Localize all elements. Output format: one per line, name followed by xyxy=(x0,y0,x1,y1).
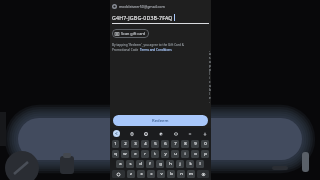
staticText: b xyxy=(170,171,173,177)
staticText: u xyxy=(174,151,177,157)
button[interactable]: r xyxy=(141,150,149,158)
staticText: 5 xyxy=(154,141,157,147)
staticText: 1 xyxy=(114,141,117,147)
staticText: modcleisner50@gmail.com xyxy=(119,4,165,9)
button[interactable]: c xyxy=(147,170,155,178)
button[interactable]: Shift xyxy=(112,170,125,178)
staticText: 2 xyxy=(124,141,127,147)
staticText: 4 xyxy=(144,141,147,147)
button[interactable]: p xyxy=(201,150,209,158)
staticText: p xyxy=(204,151,207,157)
button[interactable]: o xyxy=(191,150,199,158)
button[interactable]: d xyxy=(136,160,144,168)
button[interactable]: modcleisner50@gmail.com xyxy=(110,3,211,10)
button[interactable]: g xyxy=(156,160,164,168)
staticText: Scan gift card xyxy=(121,31,146,36)
staticText: n xyxy=(180,171,183,177)
button[interactable]: h xyxy=(166,160,174,168)
button[interactable]: k xyxy=(186,160,194,168)
button[interactable]: 9 xyxy=(191,140,199,148)
staticText: Redeem xyxy=(152,118,169,124)
staticText: a xyxy=(119,161,122,167)
button[interactable]: u xyxy=(171,150,179,158)
button[interactable]: j xyxy=(176,160,184,168)
button[interactable]: 2 xyxy=(121,140,129,148)
button[interactable]: t xyxy=(151,150,159,158)
button[interactable]: e xyxy=(131,150,139,158)
staticText: e xyxy=(134,151,137,157)
staticText: m xyxy=(189,171,193,177)
button[interactable]: s xyxy=(126,160,134,168)
button[interactable]: Clipboard xyxy=(128,130,135,137)
staticText: j xyxy=(179,161,181,167)
staticText: g xyxy=(159,161,162,167)
staticText: 7 xyxy=(174,141,177,147)
staticText: By tapping 'Redeem', you agree to the Gi… xyxy=(112,43,185,47)
button[interactable]: Backspace xyxy=(197,170,209,178)
button[interactable]: 8 xyxy=(181,140,189,148)
button[interactable]: l xyxy=(196,160,204,168)
staticText: x xyxy=(140,171,143,177)
staticText: i xyxy=(184,151,186,157)
staticText: c xyxy=(150,171,153,177)
button[interactable]: f xyxy=(146,160,154,168)
button[interactable]: q xyxy=(112,150,119,158)
button[interactable]: Terms and Conditions xyxy=(140,48,209,52)
button[interactable]: n xyxy=(177,170,185,178)
button[interactable]: x xyxy=(137,170,145,178)
staticText: s xyxy=(129,161,132,167)
button[interactable]: Redeem xyxy=(113,115,208,126)
staticText: v xyxy=(160,171,163,177)
button[interactable]: Stickers xyxy=(157,130,164,137)
staticText: t xyxy=(154,151,156,157)
button[interactable]: 3 xyxy=(131,140,139,148)
button[interactable]: 1 xyxy=(112,140,119,148)
staticText: r xyxy=(144,151,146,157)
button[interactable]: GIF xyxy=(172,130,179,137)
button[interactable]: Scan gift card xyxy=(112,29,149,38)
staticText: w xyxy=(123,151,127,157)
staticText: 8 xyxy=(184,141,187,147)
staticText: 9 xyxy=(194,141,197,147)
button[interactable]: 6 xyxy=(161,140,169,148)
button[interactable]: More options xyxy=(186,130,193,137)
button[interactable]: v xyxy=(157,170,165,178)
button[interactable]: Voice input xyxy=(201,130,208,137)
button[interactable]: i xyxy=(181,150,189,158)
button[interactable]: m xyxy=(187,170,195,178)
button[interactable]: 4 xyxy=(141,140,149,148)
button[interactable]: 7 xyxy=(171,140,179,148)
staticText: 3 xyxy=(134,141,137,147)
staticText: Promotional Code xyxy=(112,48,140,52)
staticText: l xyxy=(199,161,201,167)
button[interactable]: a xyxy=(116,160,124,168)
staticText: G4H7-JGBG-0D3B-7FAQ xyxy=(112,14,173,21)
button[interactable]: 5 xyxy=(151,140,159,148)
button[interactable]: z xyxy=(127,170,135,178)
staticText: k xyxy=(189,161,192,167)
staticText: q xyxy=(114,151,117,157)
button[interactable]: w xyxy=(121,150,129,158)
staticText: 6 xyxy=(164,141,167,147)
staticText: h xyxy=(169,161,172,167)
staticText: y xyxy=(164,151,167,157)
staticText: d xyxy=(139,161,142,167)
button[interactable]: 0 xyxy=(201,140,209,148)
button[interactable]: y xyxy=(161,150,169,158)
button[interactable]: Settings xyxy=(142,130,149,137)
button[interactable]: Expand toolbar xyxy=(113,130,120,137)
button[interactable]: b xyxy=(167,170,175,178)
staticText: Terms and Conditions xyxy=(140,48,172,52)
staticText: 0 xyxy=(204,141,207,147)
staticText: z xyxy=(130,171,132,177)
staticText: f xyxy=(149,161,151,167)
staticText: o xyxy=(194,151,197,157)
